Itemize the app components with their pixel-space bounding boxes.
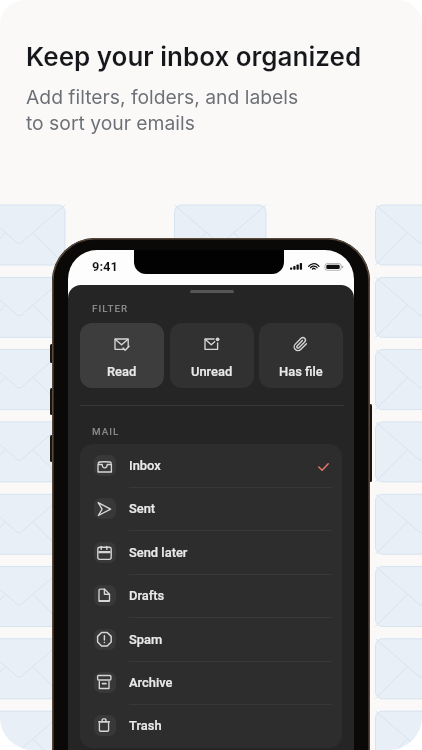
staticText: Keep your inbox organized — [26, 41, 362, 72]
staticText: 9:41 — [92, 259, 118, 274]
button[interactable]: Send later — [80, 531, 342, 574]
other: Selected — [318, 463, 330, 472]
staticText: Inbox — [129, 458, 161, 473]
staticText: Archive — [129, 675, 173, 690]
button[interactable]: Read — [80, 323, 164, 388]
staticText: FILTER — [92, 303, 129, 314]
staticText: Sent — [129, 501, 156, 516]
button[interactable]: Sent — [80, 487, 342, 530]
staticText: Add filters, folders, and labels to sort… — [26, 85, 299, 134]
button[interactable]: Has file — [259, 323, 343, 388]
button[interactable]: Drafts — [80, 574, 342, 617]
staticText: Has file — [279, 364, 323, 379]
staticText: Spam — [129, 632, 163, 647]
staticText: Unread — [191, 364, 233, 379]
button[interactable]: Trash — [80, 704, 342, 747]
staticText: Read — [107, 364, 137, 379]
staticText: Drafts — [129, 588, 165, 603]
button[interactable]: Unread — [170, 323, 254, 388]
staticText: Send later — [129, 545, 188, 560]
button[interactable]: Spam — [80, 618, 342, 661]
button[interactable]: Archive — [80, 661, 342, 704]
staticText: MAIL — [92, 426, 120, 437]
button[interactable]: Inbox — [80, 444, 342, 487]
staticText: Trash — [129, 718, 162, 733]
